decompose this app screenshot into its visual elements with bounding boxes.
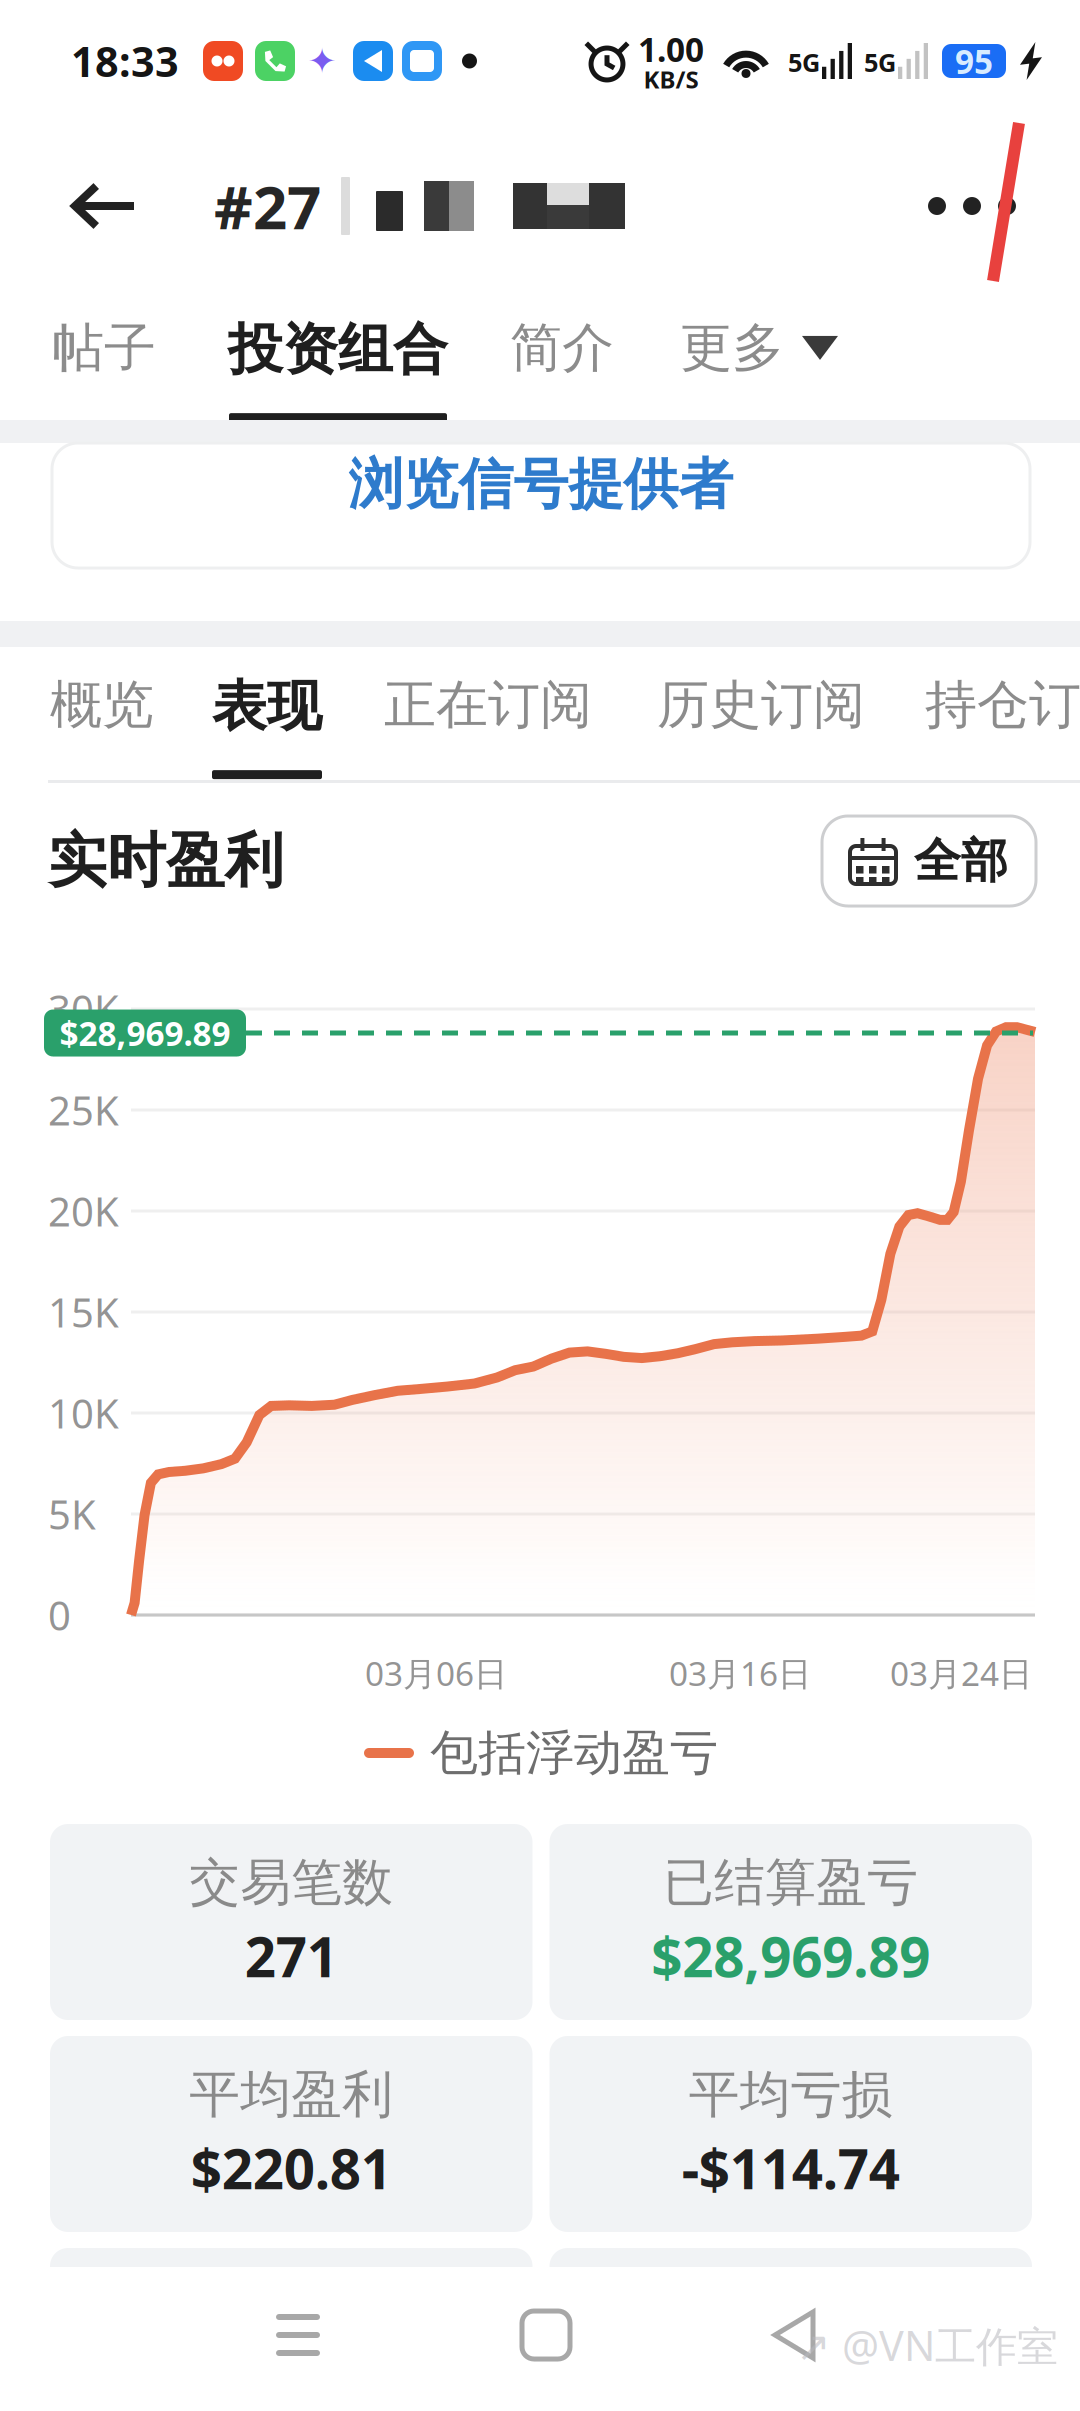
button[interactable]: 浏览信号提供者 <box>52 443 1030 568</box>
staticText: 更多 <box>680 316 784 380</box>
staticText: 概览 <box>50 673 154 737</box>
staticText: 持仓订 <box>925 673 1080 737</box>
staticText: 271 <box>245 1920 338 1992</box>
staticText: ↗ @VN工作室 <box>796 2317 1058 2372</box>
staticText: 简介 <box>510 316 614 380</box>
button[interactable]: Home <box>494 2283 598 2387</box>
button[interactable]: Back <box>0 153 214 259</box>
staticText: 交易笔数 <box>189 1852 393 1914</box>
button[interactable]: 帖子 <box>52 290 156 419</box>
staticText: $220.81 <box>191 2132 392 2204</box>
staticText: 平均盈利 <box>189 2064 393 2126</box>
button[interactable]: 正在订阅 <box>383 647 593 776</box>
button[interactable]: More options <box>888 153 1080 259</box>
staticText: KB/S <box>643 63 698 95</box>
staticText: $28,969.89 <box>59 1011 230 1055</box>
staticText: 25K <box>48 1083 119 1136</box>
button[interactable]: 全部 <box>822 816 1036 906</box>
button[interactable]: 持仓订 <box>924 647 1080 776</box>
staticText: 15K <box>48 1285 119 1338</box>
button[interactable]: 表现 <box>212 647 322 779</box>
staticText: 03月06日 <box>365 1651 507 1695</box>
staticText: 包括浮动盈亏 <box>430 1723 718 1782</box>
button[interactable]: Recents <box>246 2283 350 2387</box>
staticText: 30K <box>48 982 119 1035</box>
staticText: 18:33 <box>71 34 179 88</box>
staticText: 20K <box>48 1184 119 1237</box>
staticText: 03月24日 <box>890 1651 1032 1695</box>
button[interactable]: 概览 <box>50 647 154 776</box>
button[interactable]: 更多 <box>680 290 838 380</box>
staticText: 1.00 <box>638 27 704 71</box>
staticText: 已结算盈亏 <box>663 1852 918 1914</box>
button[interactable]: 投资组合 <box>228 290 448 422</box>
staticText: 帖子 <box>52 316 156 380</box>
staticText: #27 <box>214 166 321 246</box>
staticText: 95 <box>955 39 993 83</box>
staticText: 全部 <box>914 832 1008 890</box>
staticText: 历史订阅 <box>657 673 865 737</box>
staticText: 03月16日 <box>669 1651 811 1695</box>
staticText: 0 <box>48 1588 71 1641</box>
staticText: $28,969.89 <box>651 1920 930 1992</box>
button[interactable]: 历史订阅 <box>656 647 866 776</box>
staticText: 平均亏损 <box>689 2064 893 2126</box>
staticText: ✦ <box>307 41 336 81</box>
staticText: 实时盈利 <box>48 825 284 897</box>
staticText: 5G <box>788 45 820 79</box>
staticText: 表现 <box>212 673 322 740</box>
staticText: 正在订阅 <box>384 673 592 737</box>
button[interactable]: 简介 <box>510 290 614 419</box>
staticText: 5K <box>48 1487 96 1540</box>
staticText: 浏览信号提供者 <box>348 451 733 518</box>
staticText: -$114.74 <box>682 2132 900 2204</box>
staticText: 5G <box>864 45 896 79</box>
staticText: 10K <box>48 1386 119 1439</box>
staticText: 投资组合 <box>228 316 448 383</box>
button[interactable]: Back <box>742 2283 846 2387</box>
